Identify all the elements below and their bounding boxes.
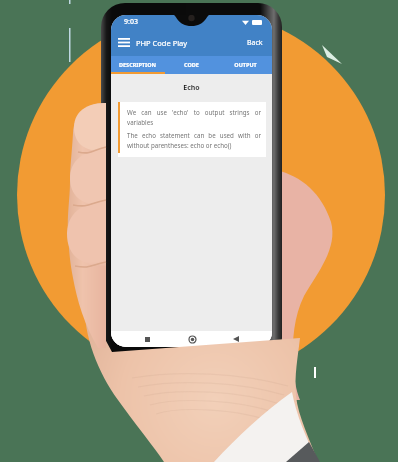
button[interactable]: Recents xyxy=(138,331,156,347)
staticText: Echo xyxy=(111,83,272,93)
staticText: The echo statement can be used with or w… xyxy=(127,131,261,150)
staticText: We can use 'echo' to output strings or v… xyxy=(127,108,261,127)
staticText: CODE xyxy=(184,61,199,68)
staticText: OUTPUT xyxy=(234,61,257,68)
staticText: DESCRIPTION xyxy=(119,61,156,68)
button[interactable]: CODE xyxy=(164,61,218,68)
button[interactable]: Menu xyxy=(115,34,132,51)
button[interactable]: DESCRIPTION xyxy=(111,61,164,68)
staticText: 9:03 xyxy=(124,17,138,27)
button[interactable]: OUTPUT xyxy=(218,61,272,68)
button[interactable]: Back xyxy=(227,331,245,347)
button[interactable]: Back xyxy=(247,38,272,48)
button[interactable]: Home xyxy=(183,331,201,347)
staticText: PHP Code Play xyxy=(136,38,188,48)
staticText: Back xyxy=(247,38,263,48)
